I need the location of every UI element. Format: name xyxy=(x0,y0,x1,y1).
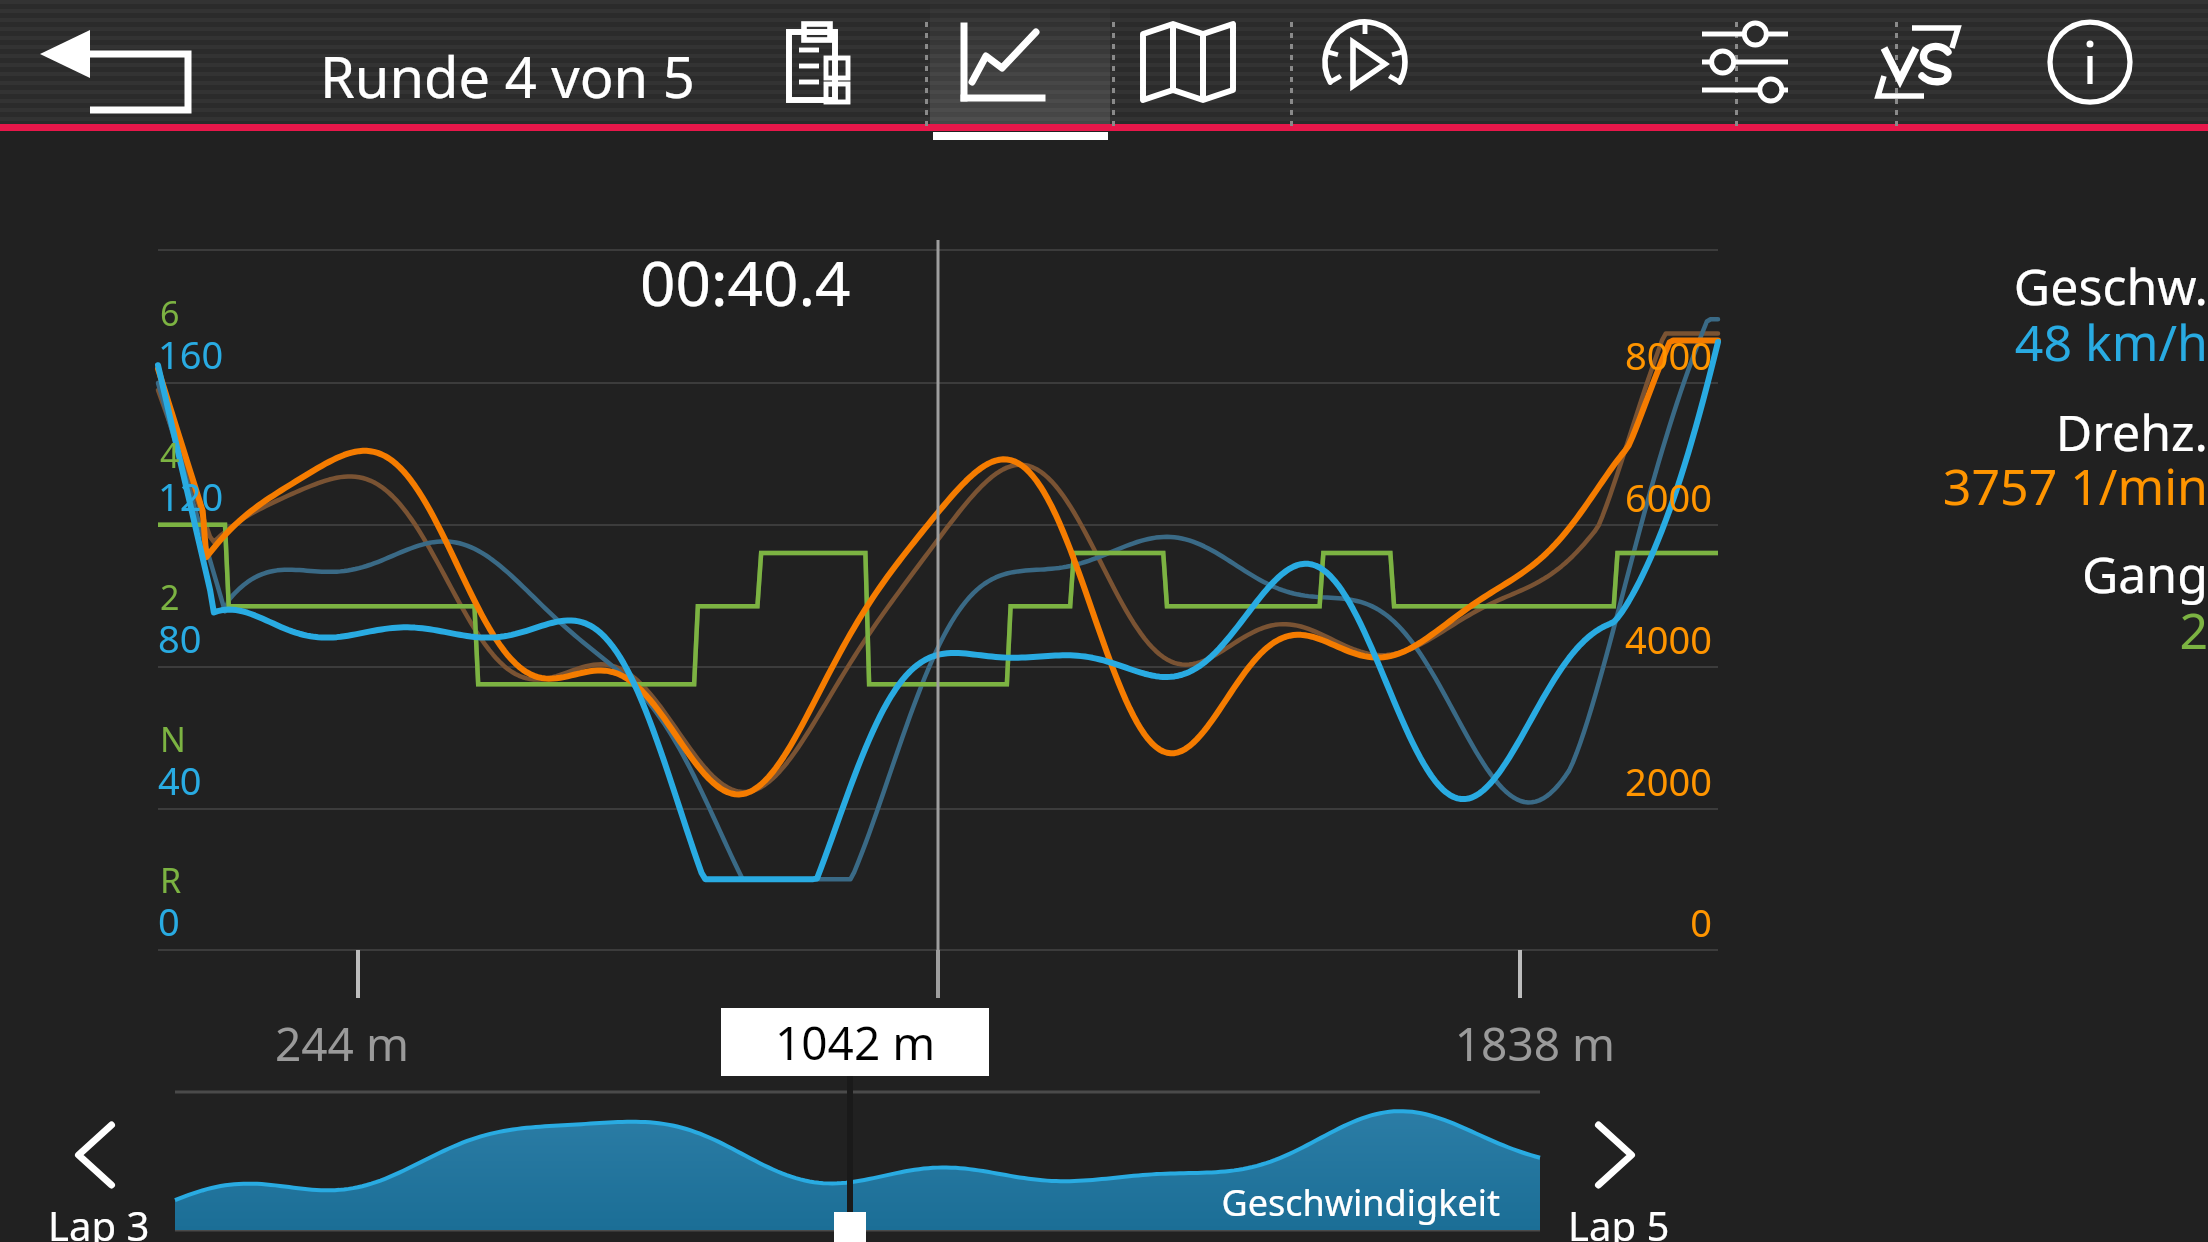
button[interactable]: Speedometer xyxy=(1306,0,1466,124)
button[interactable]: Chart xyxy=(940,0,1126,124)
staticText: 3757 1/min xyxy=(1608,452,2208,520)
staticText: 0 xyxy=(158,895,180,947)
staticText: 6000 xyxy=(1112,471,1712,523)
staticText: 2000 xyxy=(1112,755,1712,807)
staticText: 48 km/h xyxy=(1608,308,2208,376)
staticText: 0 xyxy=(1112,896,1712,948)
staticText: 80 xyxy=(158,612,202,664)
staticText: Lap 3 xyxy=(48,1198,150,1242)
staticText: 8000 xyxy=(1112,329,1712,381)
staticText: 40 xyxy=(158,754,202,806)
staticText: 2 xyxy=(1608,596,2208,664)
button[interactable]: Map xyxy=(1126,0,1306,124)
staticText: 4 xyxy=(160,432,180,478)
staticText: R xyxy=(160,857,182,903)
button[interactable]: Settings xyxy=(1715,0,1880,124)
staticText: 00:40.4 xyxy=(640,240,851,324)
staticText: 4000 xyxy=(1112,613,1712,665)
staticText: 244 m xyxy=(275,1012,409,1075)
staticText: 2 xyxy=(160,574,180,620)
button[interactable]: Previous lap xyxy=(20,1080,170,1240)
button[interactable]: Back xyxy=(0,0,170,124)
staticText: 6 xyxy=(160,290,180,336)
staticText: 120 xyxy=(158,470,224,522)
staticText: Drehz. xyxy=(1608,398,2208,466)
button[interactable]: Info xyxy=(2040,0,2208,124)
staticText: Geschw. xyxy=(1608,252,2208,320)
staticText: Geschwindigkeit xyxy=(900,1178,1500,1227)
staticText: 1042 m xyxy=(775,1011,936,1074)
button[interactable]: Compare xyxy=(1880,0,2040,124)
button[interactable] xyxy=(170,0,790,124)
staticText: N xyxy=(160,716,186,762)
staticText: 1838 m xyxy=(1015,1012,1615,1075)
staticText: Runde 4 von 5 xyxy=(320,38,695,114)
button[interactable]: Lap data xyxy=(790,0,940,124)
staticText: Gang xyxy=(1608,540,2208,608)
button[interactable]: Next lap xyxy=(1545,1080,1695,1240)
staticText: Lap 5 xyxy=(1568,1198,1670,1242)
staticText: 160 xyxy=(158,328,224,380)
